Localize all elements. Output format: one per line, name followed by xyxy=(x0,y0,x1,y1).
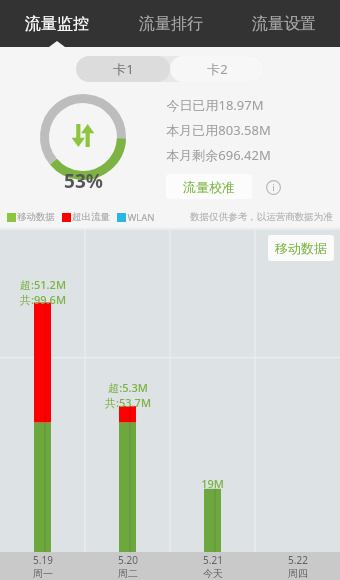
staticText: 5.21 xyxy=(203,553,223,567)
staticText: 本月剩余696.42M xyxy=(166,146,271,164)
staticText: 本月已用803.58M xyxy=(166,121,271,139)
staticText: 超:51.2M xyxy=(20,277,66,292)
button[interactable]: 卡2 xyxy=(170,56,264,82)
button[interactable]: 流量排行 xyxy=(114,0,227,47)
staticText: 数据仅供参考，以运营商数据为准 xyxy=(190,211,333,223)
staticText: 流量监控 xyxy=(25,14,89,34)
staticText: 周二 xyxy=(118,567,138,580)
staticText: 5.20 xyxy=(118,553,138,567)
staticText: 超出流量 xyxy=(72,211,110,223)
staticText: 流量校准 xyxy=(183,179,235,195)
staticText: 移动数据 xyxy=(17,211,55,223)
button[interactable]: 流量设置 xyxy=(227,0,340,47)
staticText: 周一 xyxy=(33,567,53,580)
staticText: 流量排行 xyxy=(139,14,203,34)
staticText: 超:5.3M xyxy=(108,380,148,395)
staticText: 19M xyxy=(201,476,224,491)
staticText: 今天 xyxy=(203,567,223,580)
staticText: 共:53.7M xyxy=(105,395,151,410)
staticText: WLAN xyxy=(127,211,155,224)
button[interactable]: 流量监控 xyxy=(0,0,114,47)
staticText: 卡2 xyxy=(207,60,228,78)
button[interactable]: 流量校准 xyxy=(166,174,252,199)
staticText: 5.22 xyxy=(288,553,308,567)
staticText: 53% xyxy=(64,168,103,194)
staticText: 5.19 xyxy=(33,553,53,567)
staticText: i xyxy=(272,181,275,193)
button[interactable]: 移动数据 xyxy=(268,235,334,261)
staticText: 共:99.6M xyxy=(20,292,66,307)
staticText: 流量设置 xyxy=(252,14,316,34)
button[interactable]: 卡1 xyxy=(76,56,170,82)
staticText: 今日已用18.97M xyxy=(166,96,264,114)
staticText: 卡1 xyxy=(113,60,134,78)
button[interactable]: Info xyxy=(263,177,283,197)
staticText: 周四 xyxy=(288,567,308,580)
staticText: 移动数据 xyxy=(275,240,327,256)
